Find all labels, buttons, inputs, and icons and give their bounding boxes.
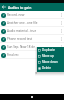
staticText: Record. new — [7, 13, 25, 17]
button[interactable]: Phone record test — [0, 35, 64, 43]
staticText: Delete — [42, 66, 51, 70]
staticText: Final rec — [7, 53, 19, 57]
staticText: Duplicate — [42, 48, 55, 52]
button[interactable]: Another one - one file — [0, 19, 64, 27]
button[interactable]: More options — [59, 35, 64, 43]
button[interactable]: Navigate up — [0, 3, 8, 11]
button[interactable]: Sun Sep. Now 18 de — [0, 43, 64, 51]
button[interactable]: Delete — [37, 65, 64, 71]
staticText: Move down — [42, 60, 58, 64]
button[interactable]: More options — [59, 11, 64, 19]
staticText: Audios to gain — [8, 5, 32, 10]
staticText: Phone record test — [7, 37, 33, 41]
staticText: Audio material - true — [7, 29, 37, 33]
button[interactable]: Move up — [37, 53, 64, 59]
staticText: Another one - one file — [7, 21, 38, 25]
button[interactable]: More options — [59, 27, 64, 35]
button[interactable]: Move down — [37, 59, 64, 65]
button[interactable]: Record. new — [0, 11, 64, 19]
staticText: Sun Sep. Now 18 de — [7, 45, 35, 49]
button[interactable]: Duplicate — [37, 47, 64, 53]
button[interactable]: More options — [59, 19, 64, 27]
button[interactable]: Final rec — [0, 51, 64, 59]
staticText: Move up — [42, 54, 54, 58]
button[interactable]: Audio material - true — [0, 27, 64, 35]
button[interactable]: More options — [59, 43, 64, 51]
